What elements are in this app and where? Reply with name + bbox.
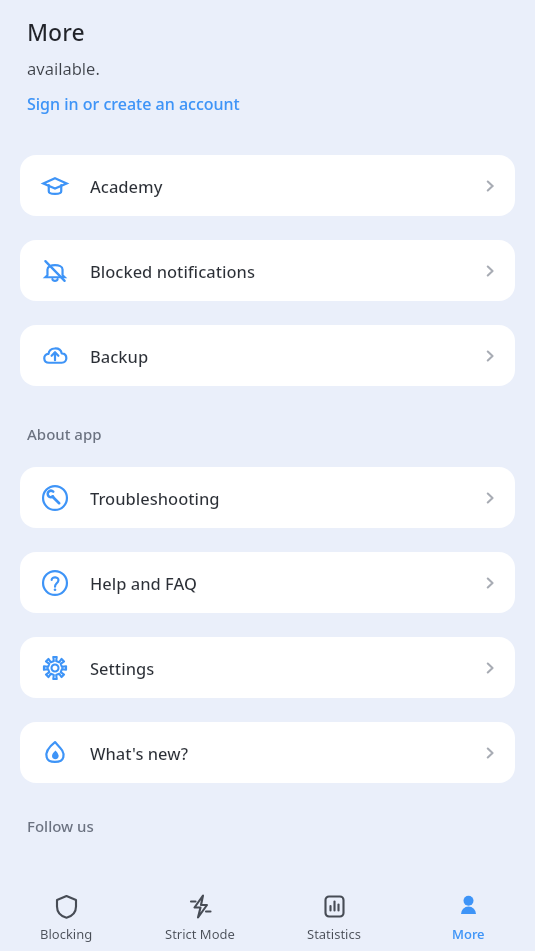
other: Backup: [42, 343, 68, 369]
staticText: Blocked notifications: [90, 260, 465, 282]
other: Statistics: [322, 894, 347, 919]
staticText: available.: [27, 57, 100, 79]
staticText: More: [452, 925, 485, 943]
button[interactable]: Sign in or create an account: [27, 93, 240, 115]
button[interactable]: Help and FAQ: [20, 552, 515, 613]
button[interactable]: Blocking: [0, 888, 133, 943]
staticText: Blocking: [40, 925, 93, 943]
button[interactable]: Statistics: [267, 888, 401, 943]
button[interactable]: Blocked notifications: [20, 240, 515, 301]
other: Blocked notifications: [42, 258, 68, 284]
button[interactable]: Settings: [20, 637, 515, 698]
other: Strict Mode: [188, 894, 213, 919]
staticText: Academy: [90, 175, 465, 197]
button[interactable]: What's new: [20, 722, 515, 783]
other: What's new: [42, 740, 68, 766]
staticText: About app: [27, 424, 102, 444]
staticText: Strict Mode: [165, 925, 235, 943]
other: Troubleshooting: [42, 485, 68, 511]
staticText: What's new?: [90, 742, 465, 764]
other: More: [456, 894, 481, 919]
staticText: More: [27, 16, 85, 47]
button[interactable]: Strict Mode: [133, 888, 267, 943]
staticText: Backup: [90, 345, 465, 367]
staticText: Statistics: [307, 925, 361, 943]
staticText: Troubleshooting: [90, 487, 465, 509]
staticText: Sign in or create an account: [27, 93, 240, 115]
button[interactable]: Academy: [20, 155, 515, 216]
other: Academy: [42, 173, 68, 199]
other: Help and FAQ: [42, 570, 68, 596]
other: Blocking: [54, 894, 79, 919]
staticText: Follow us: [27, 816, 94, 836]
staticText: Help and FAQ: [90, 572, 465, 594]
button[interactable]: More: [401, 888, 535, 943]
other: Settings: [42, 655, 68, 681]
button[interactable]: Backup: [20, 325, 515, 386]
button[interactable]: Troubleshooting: [20, 467, 515, 528]
staticText: Settings: [90, 657, 465, 679]
